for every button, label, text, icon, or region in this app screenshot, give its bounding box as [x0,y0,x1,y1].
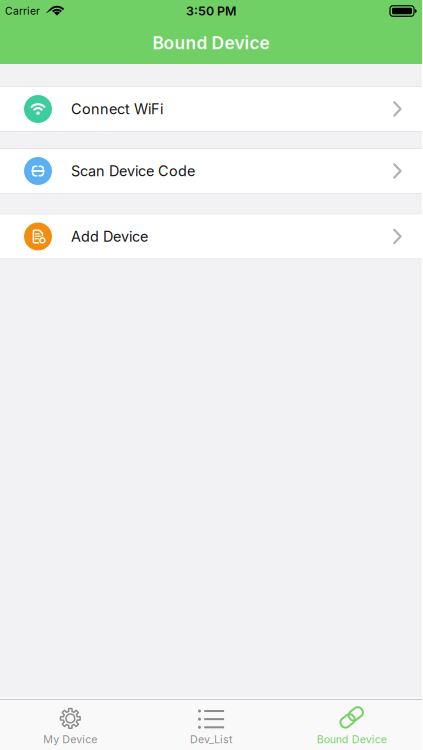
staticText: Bound Device [152,32,269,53]
staticText: Bound Device [317,733,387,746]
button[interactable]: Add Device [0,214,422,258]
staticText: Scan Device Code [71,162,195,180]
staticText: 3:50 PM [186,3,236,18]
staticText: Add Device [71,228,148,245]
staticText: Connect WiFi [71,100,163,118]
staticText: Carrier [5,5,40,17]
staticText: Dev_List [190,733,232,746]
staticText: My Device [43,733,97,746]
button[interactable]: Scan Device Code [0,149,422,193]
button[interactable]: Connect WiFi [0,87,422,131]
button[interactable]: My Device [0,700,141,748]
button[interactable]: Bound Device [281,700,422,748]
button[interactable]: Dev_List [141,700,281,748]
